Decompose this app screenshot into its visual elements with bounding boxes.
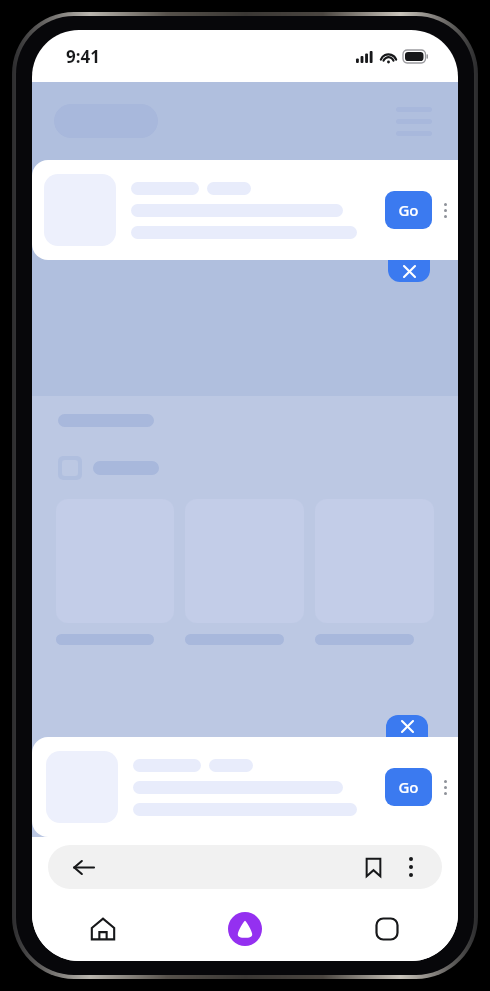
button[interactable]: Go <box>32 737 458 837</box>
staticText: Go <box>398 777 419 797</box>
button[interactable]: Go <box>32 160 458 260</box>
button[interactable]: Go <box>385 191 432 229</box>
button[interactable]: More options <box>432 190 458 230</box>
button[interactable]: Home <box>32 897 174 961</box>
button[interactable]: More options <box>432 767 458 807</box>
button[interactable]: Bookmark <box>354 848 392 886</box>
button[interactable]: Recents <box>316 897 458 961</box>
button[interactable]: Dismiss <box>386 715 428 737</box>
button[interactable]: More <box>396 852 426 882</box>
button[interactable]: Back <box>64 848 102 886</box>
button[interactable]: Dismiss <box>388 260 430 282</box>
staticText: 9:41 <box>66 45 100 68</box>
button[interactable]: Assistant <box>174 897 316 961</box>
button[interactable]: Go <box>385 768 432 806</box>
staticText: Go <box>398 200 419 220</box>
